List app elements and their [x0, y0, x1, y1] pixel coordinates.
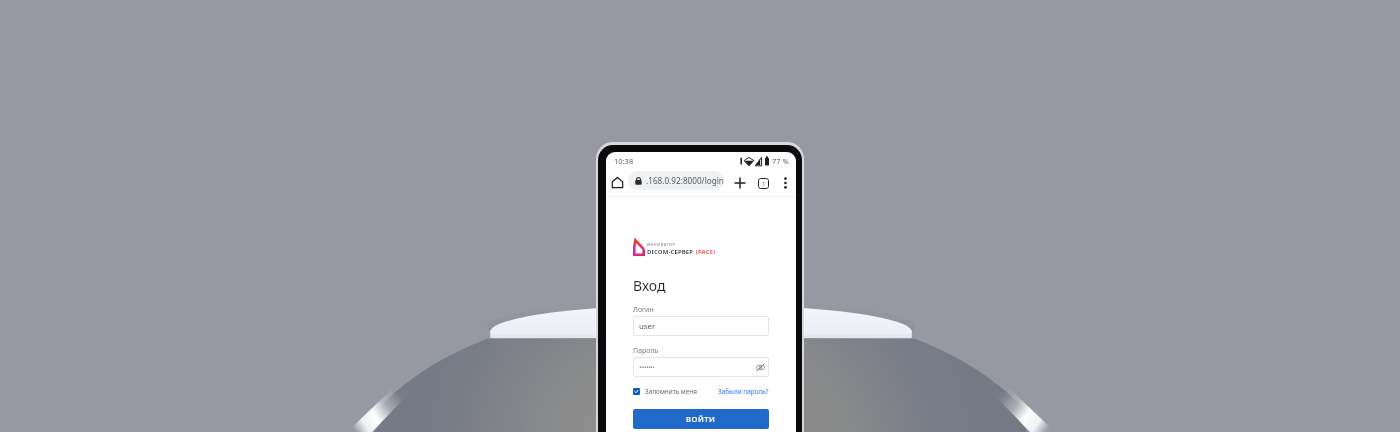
staticText: Запомнить меня: [645, 387, 697, 396]
staticText: (PACS): [694, 248, 716, 256]
staticText: 77 %: [772, 156, 789, 166]
staticText: ВОЙТИ: [686, 414, 716, 424]
staticText: 10:38: [614, 156, 634, 166]
button[interactable]: Show password: [755, 362, 765, 372]
staticText: user: [639, 321, 656, 332]
staticText: DICOM-СЕРВЕР: [647, 248, 694, 256]
staticText: Логин: [633, 305, 654, 315]
staticText: Пароль: [633, 346, 659, 356]
button[interactable]: Tabs: [754, 174, 772, 192]
button[interactable]: New tab: [731, 174, 749, 192]
staticText: Вход: [633, 276, 666, 295]
button[interactable]: Забыли пароль?: [718, 387, 769, 396]
button[interactable]: .168.0.92:8000/login: [628, 171, 724, 190]
staticText: 1: [762, 180, 766, 188]
button[interactable]: More options: [776, 174, 794, 192]
button[interactable]: Home: [609, 174, 626, 191]
button[interactable]: ВОЙТИ: [633, 409, 769, 429]
button[interactable]: Запомнить меня: [633, 387, 697, 396]
staticText: ИННОВАТОР: [647, 242, 676, 247]
button[interactable]: Show password: [633, 357, 769, 377]
staticText: .168.0.92:8000/login: [646, 175, 724, 186]
button[interactable]: user: [633, 316, 769, 336]
